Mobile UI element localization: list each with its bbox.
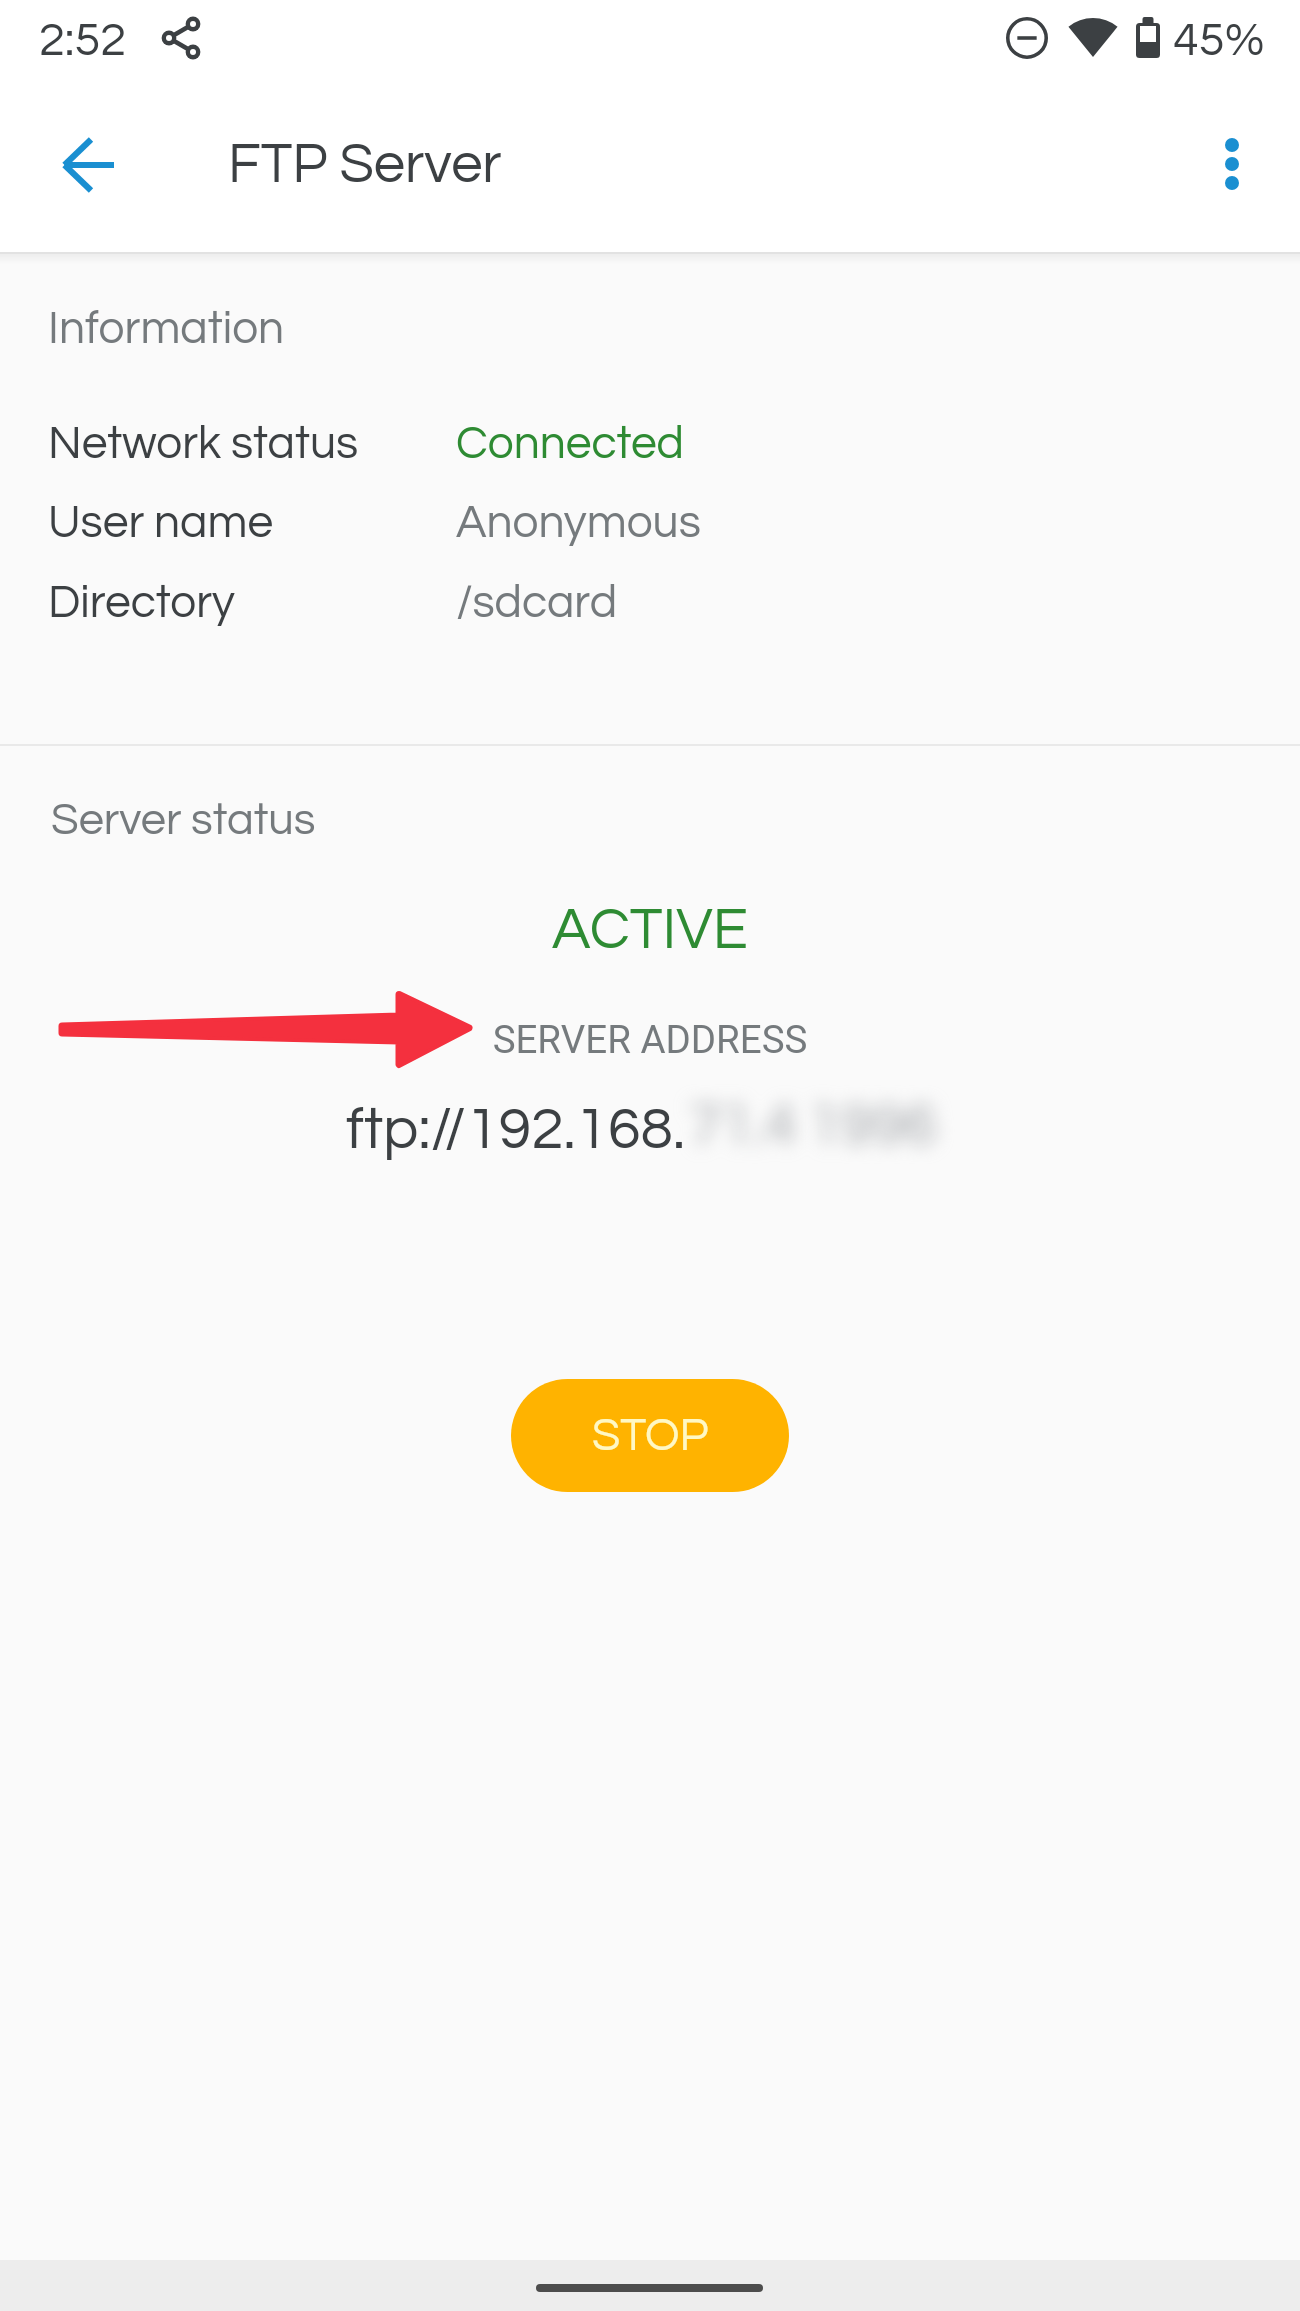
- staticText: ftp://192.168.: [346, 1100, 685, 1161]
- staticText: Information: [48, 305, 285, 352]
- staticText: SERVER ADDRESS: [0, 1017, 1300, 1062]
- staticText: FTP Server: [228, 136, 502, 194]
- staticText: Server status: [51, 797, 316, 843]
- staticText: User name: [48, 499, 274, 546]
- staticText: Connected: [456, 420, 684, 467]
- button[interactable]: Back: [44, 120, 134, 210]
- button[interactable]: STOP: [511, 1379, 789, 1492]
- staticText: Network status: [48, 420, 359, 467]
- staticText: 2:52: [39, 16, 127, 64]
- staticText: 71.4 1996: [689, 1096, 937, 1156]
- staticText: Directory: [48, 579, 235, 626]
- staticText: STOP: [592, 1412, 709, 1459]
- staticText: Anonymous: [456, 499, 701, 546]
- staticText: ACTIVE: [0, 900, 1300, 960]
- staticText: /sdcard: [456, 579, 617, 626]
- staticText: 45%: [1173, 16, 1265, 64]
- button[interactable]: More options: [1190, 122, 1274, 206]
